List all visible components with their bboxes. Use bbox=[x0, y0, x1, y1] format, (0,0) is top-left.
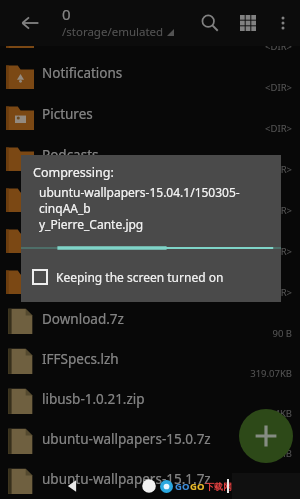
staticText: Compressing: bbox=[33, 164, 114, 181]
button[interactable]: Movies bbox=[0, 260, 300, 300]
staticText: ubuntu-wallpapers-15.04.1/150305-cinqAA_… bbox=[39, 184, 271, 216]
staticText: /storage/emulated bbox=[62, 24, 164, 40]
staticText: <DIR> bbox=[0, 122, 292, 135]
staticText: 下载网 bbox=[205, 481, 232, 492]
staticText: <DIR> bbox=[0, 245, 292, 258]
staticText: 2.36MB bbox=[0, 447, 292, 460]
button[interactable]: Download.7z bbox=[0, 301, 300, 341]
staticText: y_Pierre_Cante.jpg bbox=[39, 216, 144, 232]
staticText: Pictures bbox=[42, 105, 93, 123]
staticText: <DIR> bbox=[0, 81, 292, 94]
staticText: Podcasts bbox=[42, 146, 99, 164]
button[interactable]: Ringtones bbox=[0, 178, 300, 218]
button[interactable]: Podcasts bbox=[0, 137, 300, 177]
staticText: IFFSpecs.lzh bbox=[42, 350, 119, 368]
button[interactable]: Search bbox=[192, 5, 228, 41]
button[interactable]: More options bbox=[266, 6, 300, 40]
staticText: 319.07KB bbox=[0, 367, 292, 380]
staticText: GO bbox=[175, 480, 190, 493]
staticText: <DIR> bbox=[0, 286, 292, 299]
button[interactable]: <DIR> bbox=[0, 14, 300, 54]
staticText: <DIR> bbox=[0, 163, 292, 176]
staticText: Download bbox=[42, 228, 107, 246]
button[interactable]: Pictures bbox=[0, 96, 300, 136]
staticText: Movies bbox=[42, 269, 87, 287]
staticText: <DIR> bbox=[0, 204, 292, 217]
staticText: 90 B bbox=[0, 327, 292, 340]
button[interactable]: Download bbox=[0, 219, 300, 259]
staticText: Download.7z bbox=[42, 310, 124, 328]
button[interactable]: IFFSpecs.lzh bbox=[0, 341, 300, 381]
button[interactable]: libusb-1.0.21.zip bbox=[0, 381, 300, 421]
staticText: Ringtones bbox=[42, 187, 106, 205]
button[interactable]: Back bbox=[8, 1, 52, 45]
staticText: GO bbox=[190, 480, 205, 493]
staticText: 4KB bbox=[0, 407, 292, 420]
staticText: ubuntu-wallpapers-15.0.7z bbox=[42, 430, 211, 448]
staticText: Keeping the screen turned on bbox=[56, 269, 224, 285]
button[interactable]: ubuntu-wallpapers-15.1.7z bbox=[0, 461, 300, 499]
staticText: <DIR> bbox=[0, 40, 292, 53]
staticText: libusb-1.0.21.zip bbox=[42, 390, 145, 408]
staticText: 0 bbox=[62, 4, 71, 24]
button[interactable]: View mode bbox=[230, 5, 266, 41]
staticText: Notifications bbox=[42, 64, 123, 82]
staticText: ubuntu-wallpapers-15.1.7z bbox=[42, 470, 211, 488]
button[interactable]: ubuntu-wallpapers-15.0.7z bbox=[0, 421, 300, 461]
button[interactable]: Add bbox=[239, 409, 293, 463]
button[interactable]: Notifications bbox=[0, 55, 300, 95]
button[interactable]: Keeping the screen turned on bbox=[33, 264, 271, 290]
